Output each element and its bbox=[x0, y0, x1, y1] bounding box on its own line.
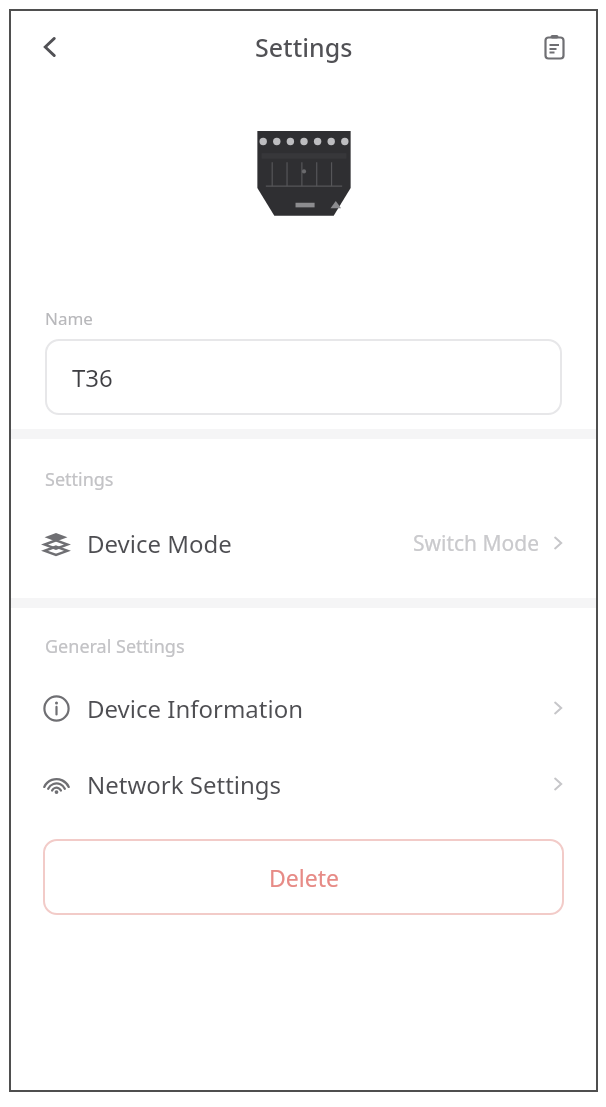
button[interactable]: Delete bbox=[43, 839, 564, 915]
button[interactable]: Network Settings bbox=[9, 757, 598, 811]
staticText: Network Settings bbox=[87, 768, 282, 801]
button[interactable]: Device Information bbox=[9, 681, 598, 735]
staticText: Name bbox=[45, 307, 93, 330]
staticText: Settings bbox=[45, 467, 114, 492]
staticText: Device Mode bbox=[87, 527, 232, 560]
staticText: Settings bbox=[255, 30, 353, 64]
button[interactable]: Back bbox=[27, 24, 73, 70]
staticText: General Settings bbox=[45, 634, 185, 659]
staticText: Switch Mode bbox=[413, 529, 540, 558]
button[interactable]: Device log bbox=[532, 25, 576, 69]
staticText: T36 bbox=[72, 361, 113, 394]
button[interactable]: T36 bbox=[45, 339, 562, 415]
staticText: Device Information bbox=[87, 692, 304, 725]
button[interactable]: Device Mode bbox=[9, 516, 598, 570]
staticText: Delete bbox=[269, 862, 339, 893]
